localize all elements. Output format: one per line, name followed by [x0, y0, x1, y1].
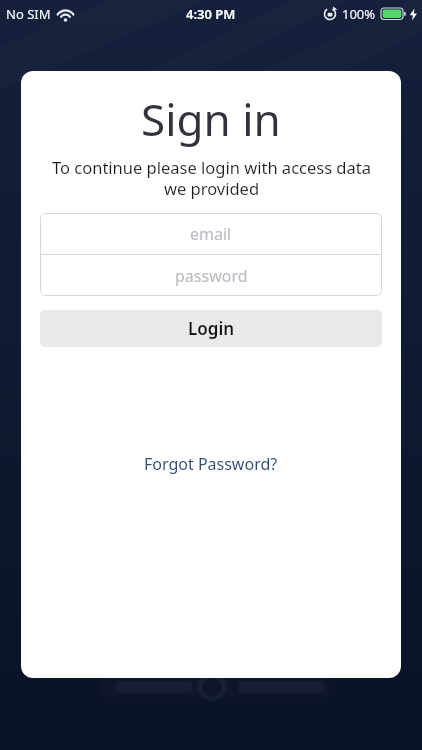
- staticText: 4:30 PM: [186, 5, 236, 23]
- staticText: To continue please login with access dat…: [52, 156, 371, 200]
- staticText: Login: [188, 317, 235, 340]
- button[interactable]: password: [40, 255, 382, 296]
- button[interactable]: Forgot Password?: [140, 449, 282, 479]
- button[interactable]: email: [40, 213, 382, 254]
- staticText: password: [175, 265, 248, 287]
- staticText: email: [190, 223, 232, 245]
- staticText: No SIM: [6, 5, 51, 23]
- staticText: Sign in: [141, 89, 281, 149]
- staticText: 100%: [342, 5, 376, 23]
- button[interactable]: Login: [40, 310, 382, 347]
- staticText: Forgot Password?: [144, 453, 278, 475]
